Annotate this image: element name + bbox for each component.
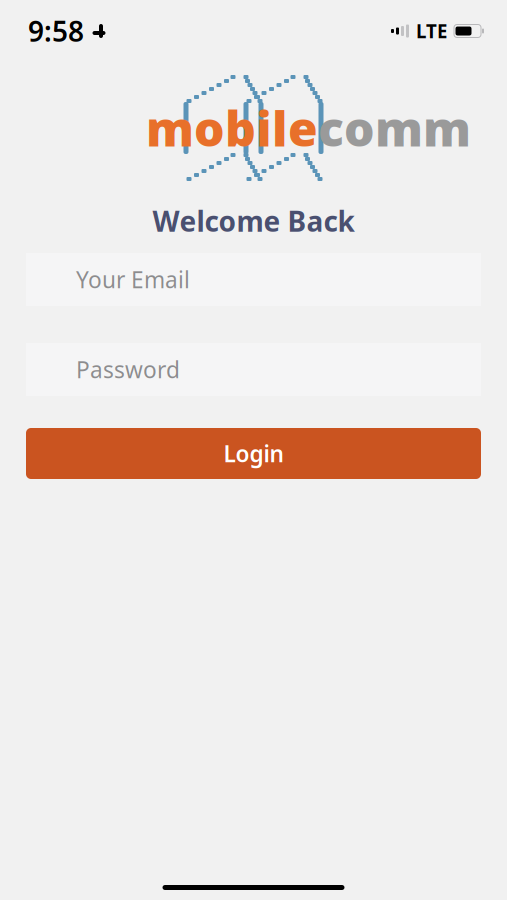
staticText: mobile [146,96,318,160]
staticText: Your Email [76,264,190,294]
button[interactable]: Your Email [26,253,481,306]
staticText: Login [223,438,283,468]
staticText: LTE [416,19,447,43]
staticText: Welcome Back [152,202,354,240]
button[interactable]: Password [26,343,481,396]
staticText: comm [318,96,471,160]
staticText: Password [76,354,180,384]
staticText: 9:58 [28,12,84,50]
button[interactable]: Login [26,428,481,479]
